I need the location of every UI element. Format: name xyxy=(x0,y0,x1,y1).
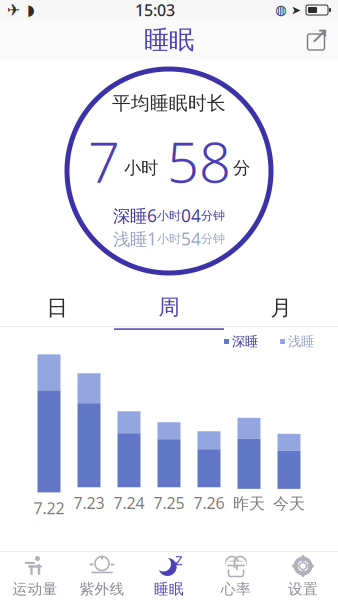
staticText: 15:03 xyxy=(135,0,175,21)
staticText: 54 xyxy=(181,227,201,250)
staticText: 分钟 xyxy=(201,231,225,246)
staticText: 分钟 xyxy=(201,208,225,223)
staticText: 分 xyxy=(233,157,250,179)
staticText: ◍ xyxy=(275,2,287,17)
staticText: 7 xyxy=(88,124,120,198)
staticText: 平均睡眠时长 xyxy=(112,92,226,115)
staticText: 日 xyxy=(46,295,67,321)
staticText: 58 xyxy=(167,124,231,198)
staticText: 运动量 xyxy=(12,580,57,598)
staticText: 7.25 xyxy=(153,492,184,513)
staticText: ↗ xyxy=(310,22,329,48)
staticText: ◗ xyxy=(27,2,35,18)
staticText: ➤ xyxy=(291,3,301,17)
staticText: 浅睡1 xyxy=(113,227,157,250)
staticText: ✈ xyxy=(7,1,20,19)
staticText: 小时 xyxy=(157,231,181,246)
staticText: 心率 xyxy=(221,580,251,598)
staticText: 设置 xyxy=(288,580,318,598)
staticText: 今天 xyxy=(273,494,305,513)
staticText: 睡眠 xyxy=(144,24,194,55)
staticText: 7.26 xyxy=(193,492,224,513)
button[interactable]: 紫外线 xyxy=(68,553,135,599)
staticText: 7.22 xyxy=(33,497,64,519)
staticText: 深睡6 xyxy=(113,204,157,227)
staticText: 月 xyxy=(270,295,291,321)
button[interactable]: 月 xyxy=(225,290,337,326)
staticText: z xyxy=(172,557,177,571)
staticText: 深睡 xyxy=(232,333,258,350)
staticText: 小时 xyxy=(124,157,158,179)
staticText: 睡眠 xyxy=(154,580,184,598)
staticText: 周 xyxy=(158,294,179,320)
staticText: 紫外线 xyxy=(79,580,124,598)
staticText: 浅睡 xyxy=(288,333,314,350)
staticText: 7.23 xyxy=(73,492,104,513)
button[interactable]: 分享 xyxy=(294,20,338,60)
staticText: 小时 xyxy=(157,208,181,223)
button[interactable]: 周 xyxy=(113,290,225,326)
staticText: Z xyxy=(175,551,183,569)
button[interactable]: 心率 xyxy=(202,553,269,599)
staticText: 7.24 xyxy=(113,492,144,513)
button[interactable]: 设置 xyxy=(269,553,336,599)
button[interactable]: 运动量 xyxy=(1,553,68,599)
staticText: 04 xyxy=(181,204,201,227)
staticText: 昨天 xyxy=(233,494,265,513)
button[interactable]: z xyxy=(135,553,202,599)
button[interactable]: 日 xyxy=(1,290,113,326)
